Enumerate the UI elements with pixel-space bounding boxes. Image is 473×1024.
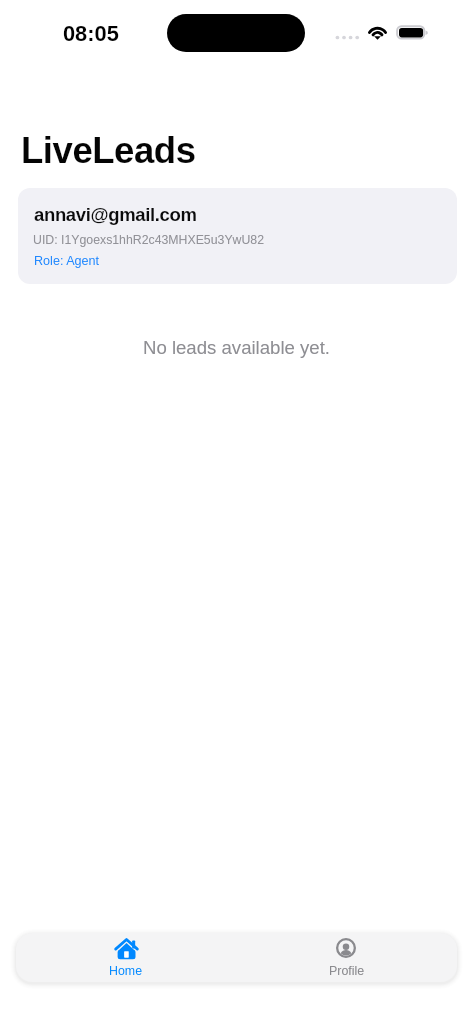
staticText: Home xyxy=(109,964,143,978)
staticText: Profile xyxy=(329,964,365,978)
staticText: annavi@gmail.com xyxy=(34,204,197,225)
staticText: No leads available yet. xyxy=(0,337,473,358)
staticText: 08:05 xyxy=(63,21,119,45)
staticText: Role: Agent xyxy=(34,254,100,268)
other: Home xyxy=(114,938,139,960)
staticText: UID: I1Ygoexs1hhR2c43MHXE5u3YwU82 xyxy=(33,233,265,247)
button[interactable]: annavi@gmail.com xyxy=(18,188,457,284)
other: Profile xyxy=(336,938,356,958)
button[interactable]: Home xyxy=(16,933,236,982)
button[interactable]: Profile xyxy=(236,933,457,982)
staticText: LiveLeads xyxy=(21,130,196,171)
